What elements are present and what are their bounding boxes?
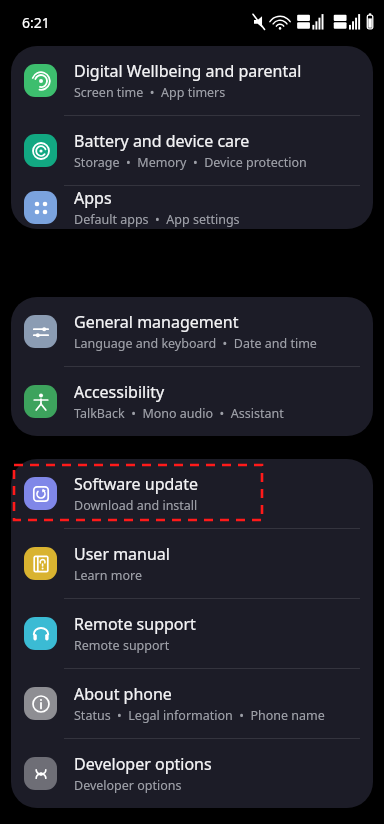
button[interactable]: About phone (11, 669, 373, 738)
staticText: TalkBack • Mono audio • Assistant (74, 405, 284, 422)
button[interactable]: User manual (11, 529, 373, 598)
button[interactable]: Accessibility (11, 367, 373, 436)
button[interactable]: Apps (11, 186, 373, 229)
staticText: Settings (24, 54, 106, 83)
staticText: Developer options (74, 753, 212, 775)
staticText: 6:21 (22, 13, 50, 32)
staticText: Remote support (74, 613, 196, 635)
staticText: User manual (74, 543, 170, 565)
staticText: Apps (74, 187, 112, 209)
staticText: About phone (74, 683, 172, 705)
button[interactable]: Remote support (11, 599, 373, 668)
staticText: Software update (74, 473, 199, 495)
button[interactable]: Search (328, 48, 368, 88)
button[interactable]: General management (11, 297, 373, 366)
button[interactable]: Digital Wellbeing and parental controls (11, 46, 373, 115)
staticText: Accessibility (74, 381, 165, 403)
staticText: Screen time • App timers (74, 84, 226, 101)
staticText: Storage • Memory • Device protection (74, 154, 307, 171)
staticText: Developer options (74, 777, 182, 794)
staticText: Language and keyboard • Date and time (74, 335, 317, 352)
staticText: Digital Wellbeing and parental controls (74, 60, 359, 82)
staticText: Learn more (74, 567, 142, 584)
staticText: Default apps • App settings (74, 211, 240, 228)
staticText: General management (74, 311, 239, 333)
button[interactable]: Battery and device care (11, 116, 373, 185)
button[interactable]: Developer options (11, 739, 373, 808)
staticText: Download and install (74, 497, 198, 514)
staticText: Status • Legal information • Phone name (74, 707, 325, 724)
button[interactable]: Software update (11, 459, 373, 528)
staticText: Remote support (74, 637, 170, 654)
staticText: Battery and device care (74, 130, 250, 152)
